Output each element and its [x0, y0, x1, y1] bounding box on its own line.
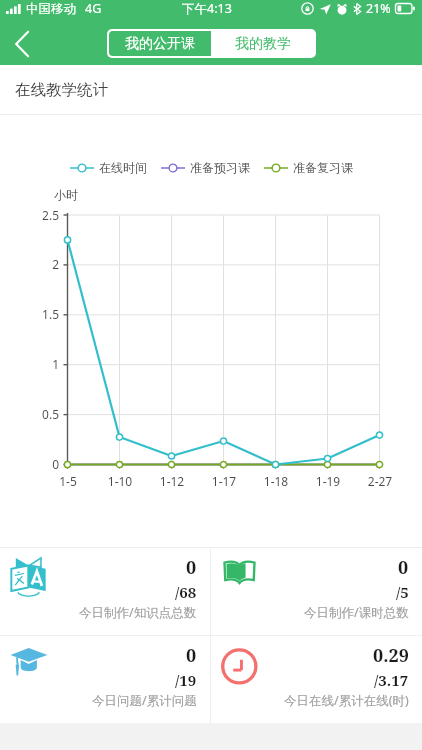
staticText: 今日制作/知识点总数	[79, 604, 197, 621]
staticText: 小时	[54, 187, 78, 202]
staticText: /19	[175, 670, 197, 690]
staticText: 0.29	[373, 643, 409, 668]
button[interactable]: Back	[0, 22, 44, 65]
staticText: 2-27	[358, 473, 402, 489]
staticText: 我的教学	[235, 35, 291, 53]
staticText: 1-19	[306, 473, 350, 489]
staticText: 在线教学统计	[15, 80, 108, 100]
staticText: 1-18	[254, 473, 298, 489]
staticText: 1-17	[202, 473, 246, 489]
staticText: 今日在线/累计在线(时)	[284, 692, 409, 709]
staticText: /68	[175, 582, 197, 602]
staticText: /3.17	[374, 670, 409, 690]
staticText: 我的公开课	[125, 35, 195, 53]
staticText: 0	[186, 555, 197, 580]
staticText: 准备预习课	[190, 160, 250, 175]
button[interactable]: 我的公开课	[109, 31, 211, 56]
staticText: 0	[186, 643, 197, 668]
staticText: 1.5	[22, 306, 59, 322]
staticText: 1-10	[98, 473, 142, 489]
staticText: 4G	[85, 0, 102, 17]
staticText: 1-5	[46, 473, 90, 489]
button[interactable]: 0	[0, 548, 210, 635]
staticText: 今日制作/课时总数	[304, 604, 409, 621]
button[interactable]: 0	[0, 636, 210, 723]
staticText: 中国移动	[26, 1, 76, 17]
button[interactable]: 0	[211, 548, 422, 635]
staticText: 1	[22, 356, 59, 372]
staticText: 下午4:13	[182, 0, 232, 17]
staticText: 今日问题/累计问题	[92, 692, 197, 709]
staticText: 21%	[366, 0, 391, 17]
button[interactable]: 我的教学	[211, 31, 314, 56]
staticText: 2.5	[22, 207, 59, 223]
staticText: 0	[398, 555, 409, 580]
staticText: 在线时间	[99, 160, 147, 175]
staticText: 0	[22, 456, 59, 472]
staticText: /5	[396, 582, 409, 602]
staticText: 0.5	[22, 406, 59, 422]
button[interactable]: 0.29	[211, 636, 422, 723]
staticText: 准备复习课	[293, 160, 353, 175]
staticText: 1-12	[150, 473, 194, 489]
staticText: 2	[22, 256, 59, 272]
